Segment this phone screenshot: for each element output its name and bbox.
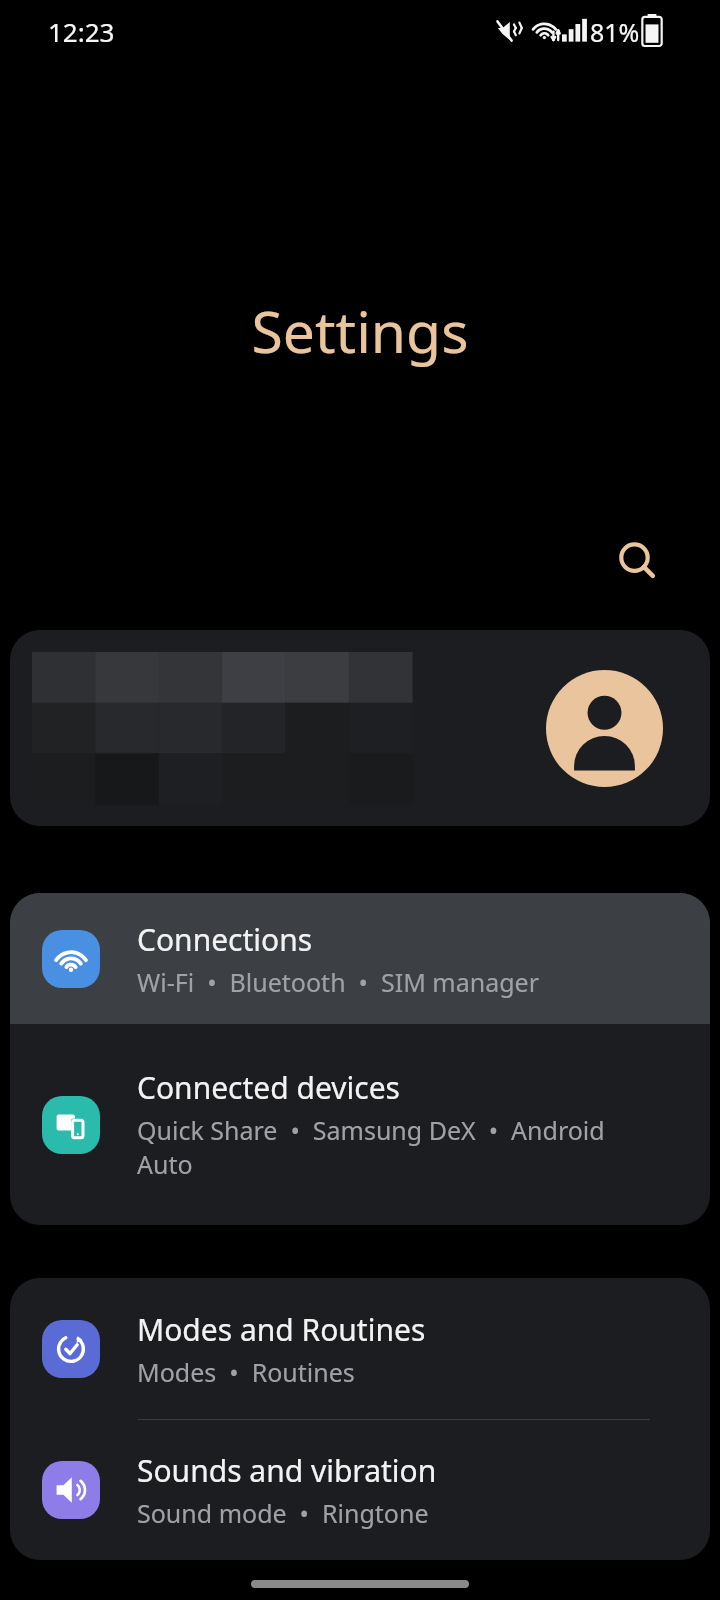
- button[interactable]: Connected devices: [10, 1024, 710, 1225]
- staticText: 81%: [590, 15, 640, 49]
- staticText: Settings: [0, 292, 720, 370]
- staticText: Sound mode • Ringtone: [137, 1496, 429, 1530]
- button[interactable]: Connections: [10, 893, 710, 1024]
- button[interactable]: [10, 893, 710, 1024]
- button[interactable]: Samsung account profile: [546, 670, 663, 787]
- button[interactable]: Modes and Routines: [10, 1278, 710, 1419]
- staticText: Connections: [137, 919, 313, 960]
- button[interactable]: Samsung account profile: [10, 630, 710, 826]
- staticText: Wi-Fi • Bluetooth • SIM manager: [137, 965, 540, 999]
- button[interactable]: Search settings: [602, 526, 674, 598]
- staticText: Connected devices: [137, 1067, 400, 1108]
- staticText: Modes and Routines: [137, 1309, 426, 1350]
- button[interactable]: Sounds and vibration: [10, 1419, 710, 1560]
- staticText: Modes • Routines: [137, 1355, 355, 1389]
- staticText: 12:23: [48, 14, 115, 49]
- staticText: Quick Share • Samsung DeX • Android Auto: [137, 1113, 605, 1182]
- staticText: Sounds and vibration: [137, 1450, 437, 1491]
